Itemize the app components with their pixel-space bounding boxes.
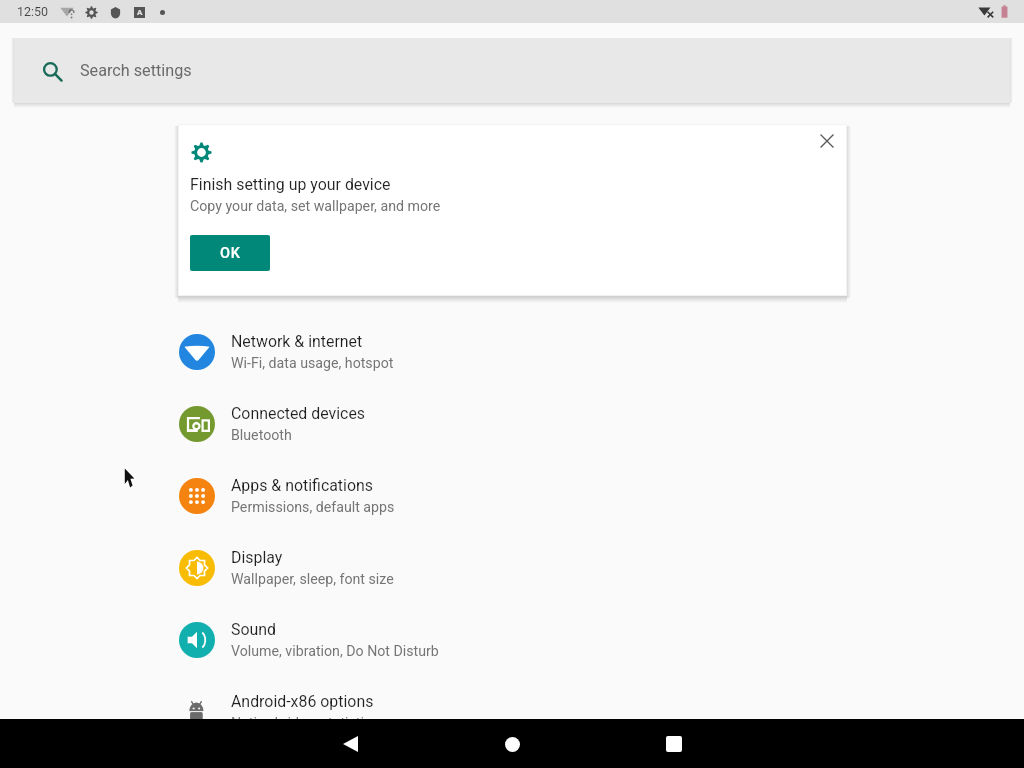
button[interactable]: Home bbox=[488, 720, 536, 768]
staticText: OK bbox=[220, 245, 241, 262]
staticText: Volume, vibration, Do Not Disturb bbox=[231, 643, 439, 660]
staticText: Native bridge, statistics bbox=[231, 715, 379, 732]
staticText: Wallpaper, sleep, font size bbox=[231, 571, 394, 588]
button[interactable]: Connected devices bbox=[179, 388, 1024, 460]
staticText: Apps & notifications bbox=[231, 476, 373, 495]
staticText: Search settings bbox=[80, 61, 192, 80]
staticText: Copy your data, set wallpaper, and more bbox=[190, 198, 441, 215]
button[interactable]: Network & internet bbox=[179, 316, 1024, 388]
button[interactable]: Dismiss bbox=[813, 127, 841, 155]
staticText: Sound bbox=[231, 620, 276, 639]
staticText: 12:50 bbox=[17, 4, 49, 19]
staticText: Network & internet bbox=[231, 332, 363, 351]
button[interactable]: OK bbox=[190, 235, 270, 271]
staticText: A bbox=[137, 8, 143, 17]
button[interactable]: Sound bbox=[179, 604, 1024, 676]
button[interactable]: Apps & notifications bbox=[179, 460, 1024, 532]
staticText: Android-x86 options bbox=[231, 692, 374, 711]
staticText: Permissions, default apps bbox=[231, 499, 395, 516]
staticText: Connected devices bbox=[231, 404, 366, 423]
button[interactable]: Search settings bbox=[14, 38, 1010, 103]
button[interactable]: Recents bbox=[650, 720, 698, 768]
button[interactable]: Android-x86 options bbox=[179, 676, 1024, 748]
staticText: Bluetooth bbox=[231, 427, 292, 444]
button[interactable]: Back bbox=[326, 720, 374, 768]
staticText: Finish setting up your device bbox=[190, 175, 391, 194]
staticText: Wi-Fi, data usage, hotspot bbox=[231, 355, 394, 372]
staticText: Display bbox=[231, 548, 283, 567]
button[interactable]: Display bbox=[179, 532, 1024, 604]
